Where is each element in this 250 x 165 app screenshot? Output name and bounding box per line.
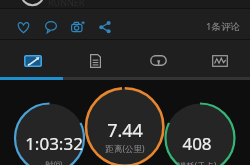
button[interactable]: Route map xyxy=(21,40,45,77)
button[interactable]: 1条评论 xyxy=(200,9,246,39)
staticText: RUNNER xyxy=(48,0,85,8)
button[interactable]: Details xyxy=(83,40,107,77)
staticText: 408 xyxy=(152,132,242,155)
staticText: 1条评论 xyxy=(206,20,240,33)
button[interactable]: Share xyxy=(91,9,118,39)
staticText: 1:03:32 xyxy=(9,132,99,155)
staticText: 7.44 xyxy=(80,118,170,143)
button[interactable]: Comment xyxy=(37,9,64,39)
button[interactable]: Charts xyxy=(208,40,232,77)
staticText: 距离(公里) xyxy=(80,143,170,155)
staticText: 消耗(千卡) xyxy=(152,160,242,165)
button[interactable]: Laps xyxy=(146,40,170,77)
staticText: 时间 xyxy=(9,160,99,165)
button[interactable]: Like xyxy=(10,9,37,39)
button[interactable]: Camera xyxy=(64,9,91,39)
